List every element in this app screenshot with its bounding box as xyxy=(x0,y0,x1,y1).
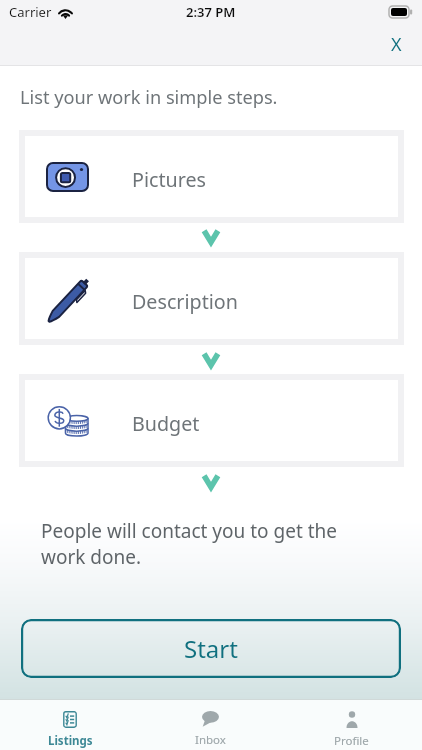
button[interactable]: Start xyxy=(21,619,401,678)
staticText: Carrier xyxy=(9,3,52,21)
staticText: Description xyxy=(132,288,238,315)
staticText: Inbox xyxy=(195,732,226,748)
staticText: People will contact you to get the work … xyxy=(41,518,338,570)
button[interactable]: Close xyxy=(371,24,422,65)
staticText: Start xyxy=(184,632,238,665)
staticText: List your work in simple steps. xyxy=(20,85,278,110)
staticText: Profile xyxy=(334,733,369,749)
staticText: 2:37 PM xyxy=(186,3,236,21)
staticText: Budget xyxy=(132,410,200,437)
button[interactable]: Inbox xyxy=(140,700,281,748)
button[interactable]: Profile xyxy=(281,700,422,749)
button[interactable]: Pictures xyxy=(25,136,398,217)
staticText: Pictures xyxy=(132,166,206,193)
staticText: Listings xyxy=(48,733,93,749)
button[interactable]: Budget xyxy=(25,380,398,461)
button[interactable]: Description xyxy=(25,258,398,339)
button[interactable]: Listings xyxy=(0,700,140,749)
staticText: X xyxy=(391,32,402,54)
